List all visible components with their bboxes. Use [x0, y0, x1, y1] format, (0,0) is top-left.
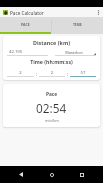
staticText: 42.195 — [9, 49, 48, 55]
staticText: Pace — [46, 91, 58, 98]
button[interactable]: Back — [12, 166, 30, 183]
staticText: : — [36, 71, 38, 77]
button[interactable]: PACE — [0, 17, 51, 34]
staticText: Pace Calculator — [10, 10, 44, 16]
button[interactable]: More options — [93, 7, 103, 17]
staticText: Time (hh:mm:ss) — [3, 58, 100, 65]
staticText: TIME — [73, 22, 82, 27]
staticText: 2 — [7, 70, 34, 76]
staticText: PACE — [21, 22, 30, 27]
staticText: Distance (km) — [3, 39, 100, 46]
staticText: : — [67, 71, 69, 77]
staticText: 57 — [70, 70, 96, 76]
staticText: 2 — [39, 70, 65, 76]
staticText: 02:54 — [36, 100, 67, 116]
button[interactable]: Recents — [73, 166, 91, 183]
button[interactable]: Marathon — [55, 50, 96, 56]
staticText: Marathon — [55, 50, 93, 55]
staticText: min/km — [45, 118, 59, 123]
button[interactable]: Home — [43, 166, 61, 183]
button[interactable]: TIME — [51, 17, 103, 34]
